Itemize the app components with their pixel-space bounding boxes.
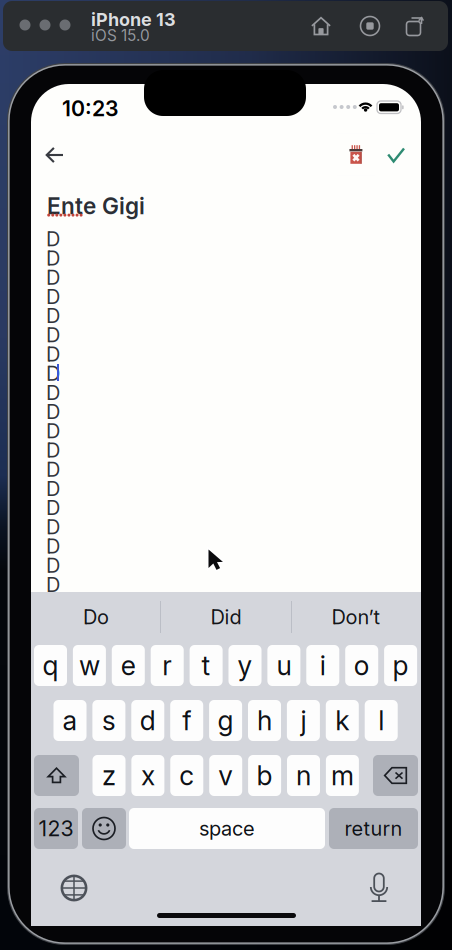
button[interactable]: f xyxy=(170,700,203,741)
button[interactable]: Save xyxy=(377,134,415,176)
staticText: return xyxy=(344,816,402,841)
staticText: n xyxy=(296,759,311,792)
button[interactable]: Dictate xyxy=(359,868,399,908)
staticText: q xyxy=(42,649,58,682)
button[interactable]: Do xyxy=(32,598,160,636)
button[interactable]: i xyxy=(306,645,339,686)
staticText: Ente Gigi xyxy=(47,192,145,220)
button[interactable]: u xyxy=(267,645,300,686)
button[interactable]: Next keyboard xyxy=(54,868,94,908)
staticText: 10:23 xyxy=(62,96,119,121)
staticText: D xyxy=(46,572,60,597)
staticText: g xyxy=(218,704,234,737)
staticText: D xyxy=(46,380,60,405)
button[interactable]: Delete xyxy=(373,755,418,796)
staticText: r xyxy=(162,649,172,682)
button[interactable]: z xyxy=(92,755,125,796)
staticText: k xyxy=(335,704,349,737)
staticText: m xyxy=(331,759,354,792)
staticText: D xyxy=(46,323,60,347)
button[interactable]: g xyxy=(209,700,242,741)
staticText: j xyxy=(300,704,306,737)
button[interactable]: Don’t xyxy=(292,598,420,636)
staticText: D xyxy=(46,496,60,520)
button[interactable]: space xyxy=(129,808,325,849)
staticText: D xyxy=(46,400,60,424)
button[interactable]: e xyxy=(112,645,145,686)
staticText: b xyxy=(257,759,273,792)
staticText: w xyxy=(79,649,100,682)
staticText: z xyxy=(102,759,116,792)
staticText: o xyxy=(354,649,370,682)
button[interactable]: n xyxy=(287,755,320,796)
button[interactable]: a xyxy=(53,700,86,741)
staticText: l xyxy=(378,704,384,737)
staticText: D xyxy=(46,342,60,366)
button[interactable]: Home xyxy=(301,9,341,43)
button[interactable]: t xyxy=(190,645,223,686)
staticText: D xyxy=(46,265,60,289)
button[interactable]: s xyxy=(92,700,125,741)
staticText: D xyxy=(46,476,60,501)
staticText: a xyxy=(62,704,77,737)
button[interactable]: Record screen xyxy=(350,9,390,43)
button[interactable]: Back xyxy=(33,134,77,176)
button[interactable]: Did xyxy=(162,598,290,636)
staticText: f xyxy=(182,704,191,737)
button[interactable]: x xyxy=(131,755,164,796)
staticText: D xyxy=(46,438,60,462)
button[interactable]: h xyxy=(248,700,281,741)
staticText: Do xyxy=(83,605,109,629)
button[interactable]: r xyxy=(151,645,184,686)
staticText: h xyxy=(257,704,272,737)
button[interactable]: k xyxy=(326,700,359,741)
staticText: 123 xyxy=(38,816,73,841)
staticText: t xyxy=(202,649,211,682)
staticText: c xyxy=(179,759,194,792)
button[interactable]: w xyxy=(73,645,106,686)
staticText: u xyxy=(276,649,291,682)
staticText: D xyxy=(46,227,60,251)
staticText: iPhone 13 xyxy=(91,9,176,30)
staticText: Did xyxy=(210,605,241,629)
staticText: x xyxy=(141,759,155,792)
button[interactable]: v xyxy=(209,755,242,796)
staticText: D xyxy=(46,534,60,558)
button[interactable]: m xyxy=(326,755,359,796)
button[interactable]: Emoji keyboard xyxy=(82,808,126,849)
staticText: D xyxy=(46,246,60,270)
staticText: e xyxy=(121,649,136,682)
button[interactable]: Rotate xyxy=(395,9,435,43)
staticText: Don’t xyxy=(331,605,380,629)
button[interactable]: q xyxy=(34,645,67,686)
button[interactable]: y xyxy=(228,645,261,686)
staticText: D xyxy=(46,457,60,481)
staticText: D xyxy=(46,553,60,577)
button[interactable]: 123 xyxy=(34,808,78,849)
staticText: D xyxy=(46,515,60,539)
button[interactable]: l xyxy=(365,700,398,741)
button[interactable]: d xyxy=(131,700,164,741)
button[interactable]: Shift xyxy=(34,755,79,796)
button[interactable]: b xyxy=(248,755,281,796)
button[interactable]: p xyxy=(384,645,417,686)
staticText: iOS 15.0 xyxy=(91,26,150,45)
button[interactable]: c xyxy=(170,755,203,796)
staticText: i xyxy=(320,649,326,682)
staticText: space xyxy=(199,816,255,841)
button[interactable]: Delete xyxy=(337,133,375,175)
button[interactable]: o xyxy=(345,645,378,686)
staticText: p xyxy=(393,649,409,682)
staticText: D xyxy=(46,284,60,309)
staticText: D xyxy=(46,419,60,443)
staticText: y xyxy=(237,649,252,682)
button[interactable]: return xyxy=(329,808,418,849)
staticText: s xyxy=(102,704,116,737)
button[interactable]: j xyxy=(287,700,320,741)
staticText: D xyxy=(46,361,60,385)
staticText: v xyxy=(218,759,233,792)
staticText: D xyxy=(46,304,60,328)
staticText: d xyxy=(140,704,156,737)
